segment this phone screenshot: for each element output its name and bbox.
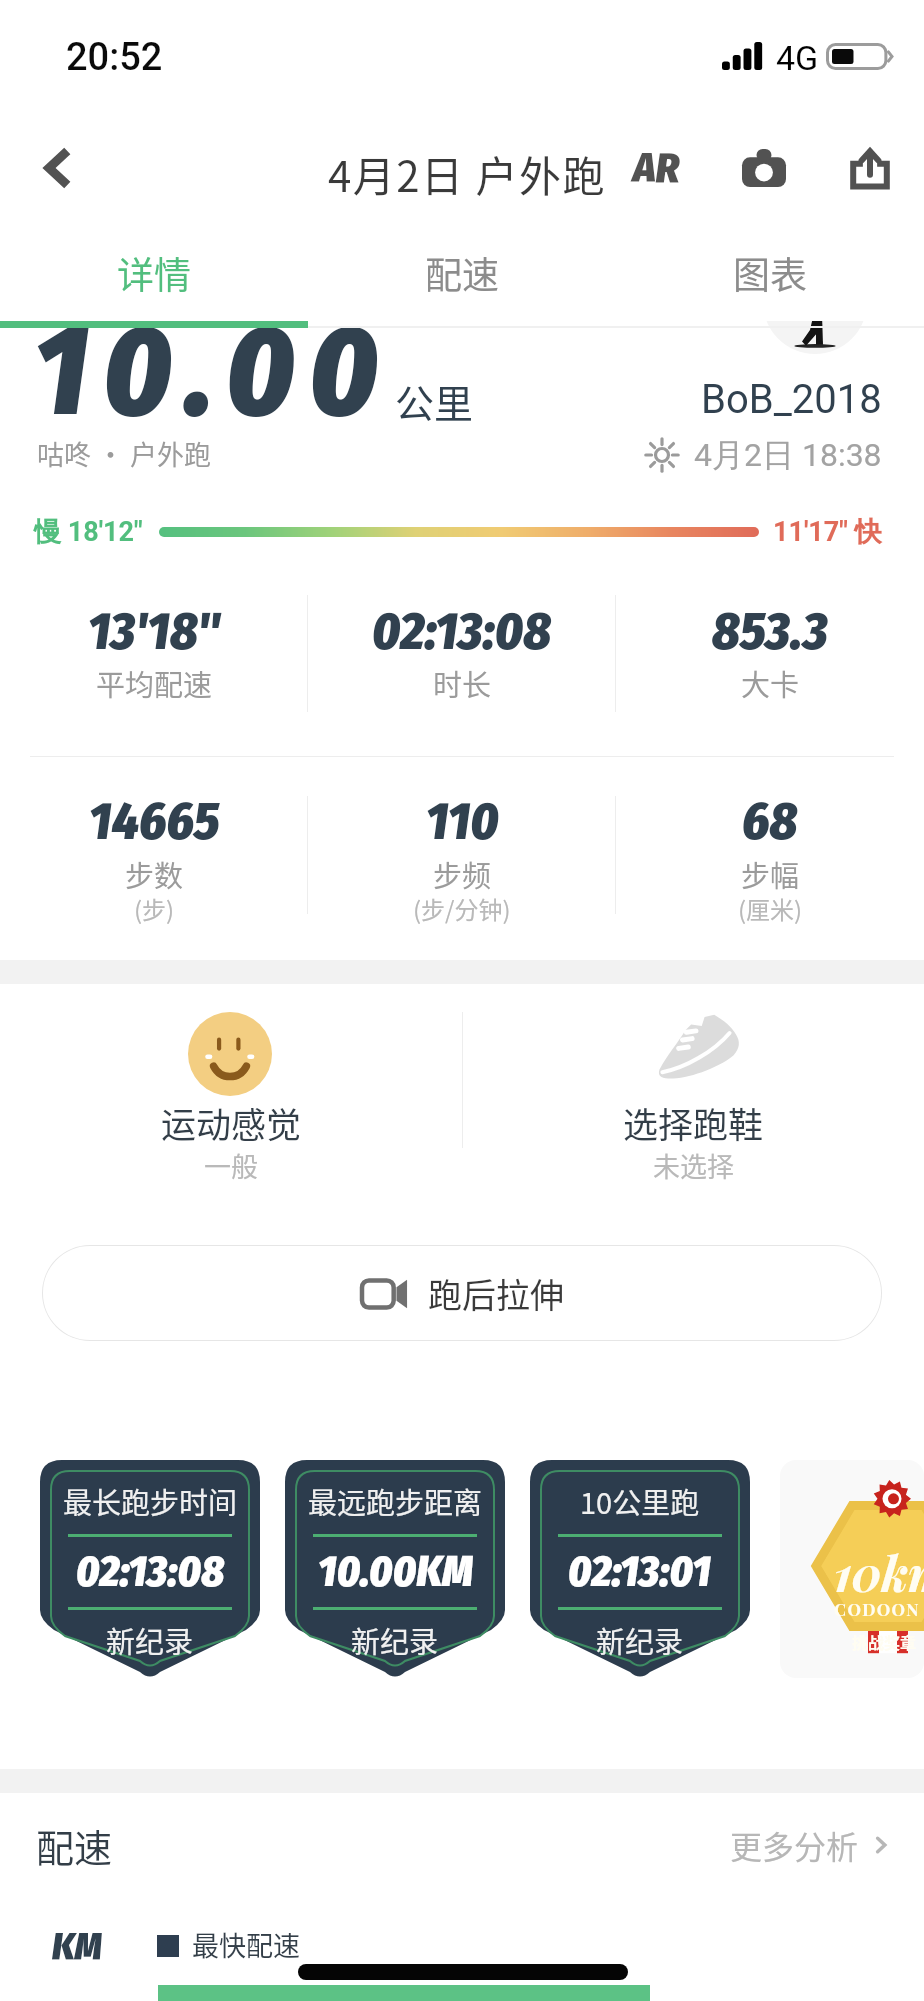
staticText: 新纪录: [596, 1619, 684, 1661]
staticText: 跑后拉伸: [428, 1269, 564, 1318]
button[interactable]: Share: [826, 126, 914, 210]
staticText: 选择跑鞋: [623, 1097, 764, 1148]
staticText: 步频: [433, 853, 492, 895]
staticText: 公里: [395, 373, 474, 429]
button[interactable]: 详情: [0, 224, 308, 321]
staticText: 时长: [433, 662, 492, 704]
button[interactable]: AR mode: [612, 126, 700, 210]
button[interactable]: 110: [308, 788, 616, 940]
button[interactable]: 图表: [616, 224, 924, 321]
staticText: 最远跑步距离: [308, 1480, 483, 1522]
staticText: 未选择: [653, 1146, 734, 1185]
staticText: 110: [426, 790, 499, 852]
button[interactable]: 02:13:08: [308, 598, 616, 711]
staticText: AR: [633, 143, 680, 193]
staticText: 4月2日 户外跑: [328, 143, 607, 204]
staticText: 14665: [89, 790, 220, 852]
staticText: 10km: [834, 1540, 924, 1604]
button[interactable]: 10km: [780, 1460, 924, 1678]
staticText: BoB_2018: [701, 376, 882, 423]
button[interactable]: 配速: [18, 1807, 278, 1883]
staticText: 4月2日 18:38: [694, 435, 882, 475]
staticText: 10公里跑: [580, 1480, 700, 1522]
staticText: 11'17" 快: [773, 515, 882, 549]
staticText: 853.3: [712, 600, 828, 662]
staticText: (厘米): [738, 891, 803, 926]
staticText: 02:13:08: [372, 600, 552, 662]
button[interactable]: 853.3: [616, 598, 924, 711]
staticText: 最长跑步时间: [63, 1480, 238, 1522]
staticText: 运动感觉: [161, 1097, 302, 1148]
button[interactable]: 跑后拉伸: [42, 1245, 882, 1341]
staticText: CODOON SPORT: [834, 1598, 924, 1621]
staticText: 配速: [425, 246, 499, 300]
staticText: (步): [134, 891, 175, 926]
button[interactable]: 10公里跑: [530, 1460, 750, 1678]
staticText: 68: [742, 790, 798, 852]
staticText: 图表: [733, 246, 807, 300]
staticText: 02:13:01: [568, 1546, 712, 1598]
staticText: 配速: [36, 1818, 113, 1873]
staticText: 10.00: [34, 296, 393, 447]
button[interactable]: 14665: [0, 788, 308, 940]
button[interactable]: 最远跑步距离: [285, 1460, 505, 1678]
staticText: 10.00KM: [318, 1546, 473, 1598]
staticText: 更多分析: [730, 1822, 859, 1868]
staticText: 4G: [776, 38, 819, 78]
staticText: 咕咚 · 户外跑: [37, 434, 212, 473]
staticText: 02:13:08: [76, 1546, 225, 1598]
button[interactable]: 更多分析: [730, 1813, 893, 1877]
staticText: 步幅: [741, 853, 800, 895]
staticText: 一般: [204, 1146, 258, 1185]
staticText: 最快配速: [192, 1925, 300, 1964]
staticText: 20:52: [66, 35, 163, 80]
staticText: 平均配速: [96, 662, 213, 704]
button[interactable]: 运动感觉: [0, 990, 462, 1190]
staticText: 步数: [125, 853, 184, 895]
staticText: 新纪录: [351, 1619, 439, 1661]
button[interactable]: 选择跑鞋: [462, 990, 924, 1190]
staticText: (步/分钟): [413, 891, 511, 926]
staticText: 13'18": [88, 600, 221, 662]
staticText: 慢 18'12": [34, 515, 143, 549]
staticText: 大卡: [741, 662, 800, 704]
button[interactable]: 最长跑步时间: [40, 1460, 260, 1678]
button[interactable]: 68: [616, 788, 924, 940]
button[interactable]: Back: [10, 122, 102, 214]
staticText: 新纪录: [106, 1619, 194, 1661]
button[interactable]: 13'18": [0, 598, 308, 711]
button[interactable]: Camera: [720, 126, 808, 210]
staticText: 详情: [117, 246, 191, 300]
staticText: KM: [52, 1923, 102, 1969]
button[interactable]: 配速: [308, 224, 616, 321]
staticText: 挑战奖章: [852, 1630, 917, 1653]
